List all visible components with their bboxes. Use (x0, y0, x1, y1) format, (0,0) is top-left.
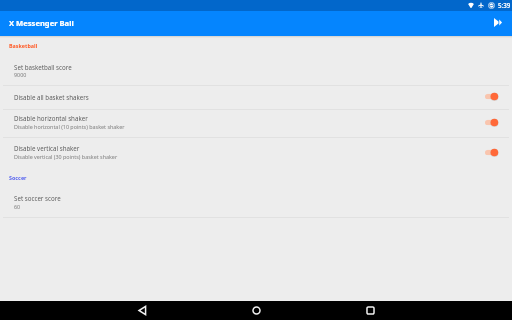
staticText: Disable horizontal shaker (14, 114, 88, 122)
button[interactable]: Disable horizontal shaker (0, 110, 512, 138)
button[interactable]: Toggle switch (485, 91, 499, 102)
button[interactable]: Home (199, 301, 313, 320)
staticText: 9000 (14, 71, 27, 78)
button[interactable]: Send (488, 13, 507, 32)
button[interactable]: Toggle switch (485, 117, 499, 128)
button[interactable]: Recent apps (313, 301, 427, 320)
button[interactable]: Disable vertical shaker (0, 138, 512, 166)
staticText: 5:39 (498, 1, 511, 9)
button[interactable]: Set basketball score (0, 56, 512, 85)
staticText: Disable vertical (30 points) basket shak… (14, 153, 118, 160)
staticText: X Messenger Ball (9, 18, 74, 28)
button[interactable]: Set soccer score (0, 188, 512, 217)
button[interactable]: Toggle switch (485, 147, 499, 158)
staticText: Soccer (9, 174, 27, 181)
staticText: Set basketball score (14, 63, 72, 71)
button[interactable]: Disable all basket shakers (0, 86, 512, 109)
staticText: Disable all basket shakers (14, 93, 89, 101)
staticText: Disable horizontal (10 points) basket sh… (14, 123, 125, 130)
button[interactable]: Back (85, 301, 199, 320)
staticText: Set soccer score (14, 194, 61, 202)
staticText: 60 (14, 203, 21, 210)
staticText: Basketball (9, 42, 38, 49)
staticText: Disable vertical shaker (14, 144, 80, 152)
